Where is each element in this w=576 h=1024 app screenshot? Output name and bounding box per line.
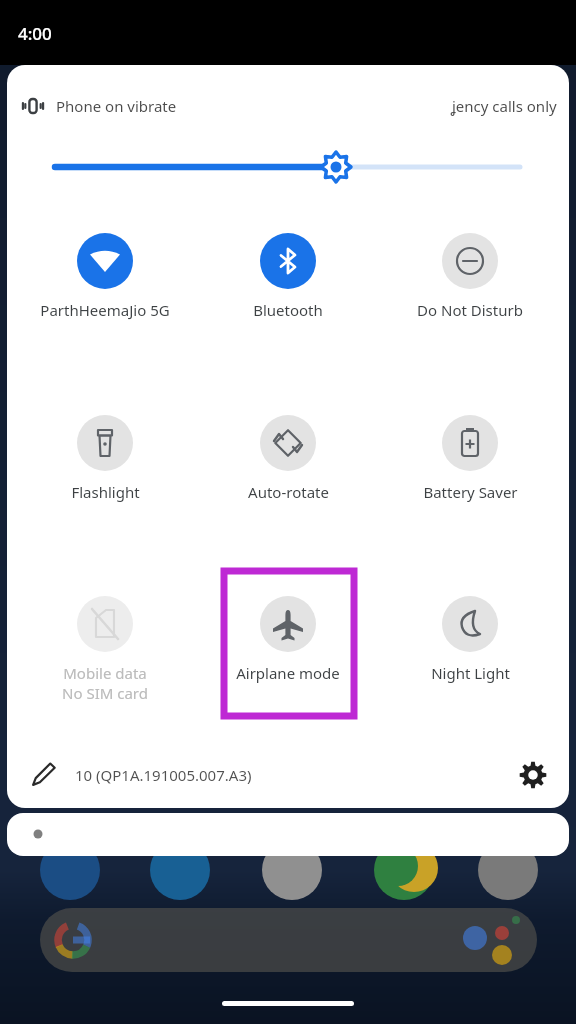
button[interactable]: Brightness [7,145,569,189]
button[interactable]: Bluetooth [222,233,354,320]
staticText: 4:00 [18,22,52,45]
button[interactable]: Flashlight [39,415,171,502]
button[interactable]: Auto-rotate [222,415,354,502]
staticText: Auto-rotate [248,482,329,502]
staticText: 10 (QP1A.191005.007.A3) [75,765,252,785]
staticText: ParthHeemaJio 5G [40,300,170,320]
button[interactable]: Phone on vibrate [19,89,179,123]
staticText: Do Not Disturb [417,300,523,320]
staticText: Phone on vibrate [56,96,177,116]
button[interactable]: Battery Saver [404,415,536,502]
staticText: Mobile data [63,663,147,683]
staticText: Battery Saver [423,482,518,502]
button[interactable]: ParthHeemaJio 5G [39,233,171,320]
staticText: Bluetooth [253,300,323,320]
button[interactable]: Do Not Disturb [404,233,536,320]
staticText: ʝency calls only [452,96,557,116]
button[interactable]: Night Light [404,596,536,683]
button[interactable]: Google search [40,908,537,972]
button[interactable]: Airplane mode [222,596,354,683]
staticText: No SIM card [62,683,148,703]
button[interactable]: Edit tiles [25,757,61,793]
staticText: Flashlight [71,482,140,502]
staticText: Airplane mode [236,663,340,683]
staticText: Night Light [431,663,510,683]
button[interactable]: Mobile data [39,596,171,703]
button[interactable]: Settings [513,755,553,795]
